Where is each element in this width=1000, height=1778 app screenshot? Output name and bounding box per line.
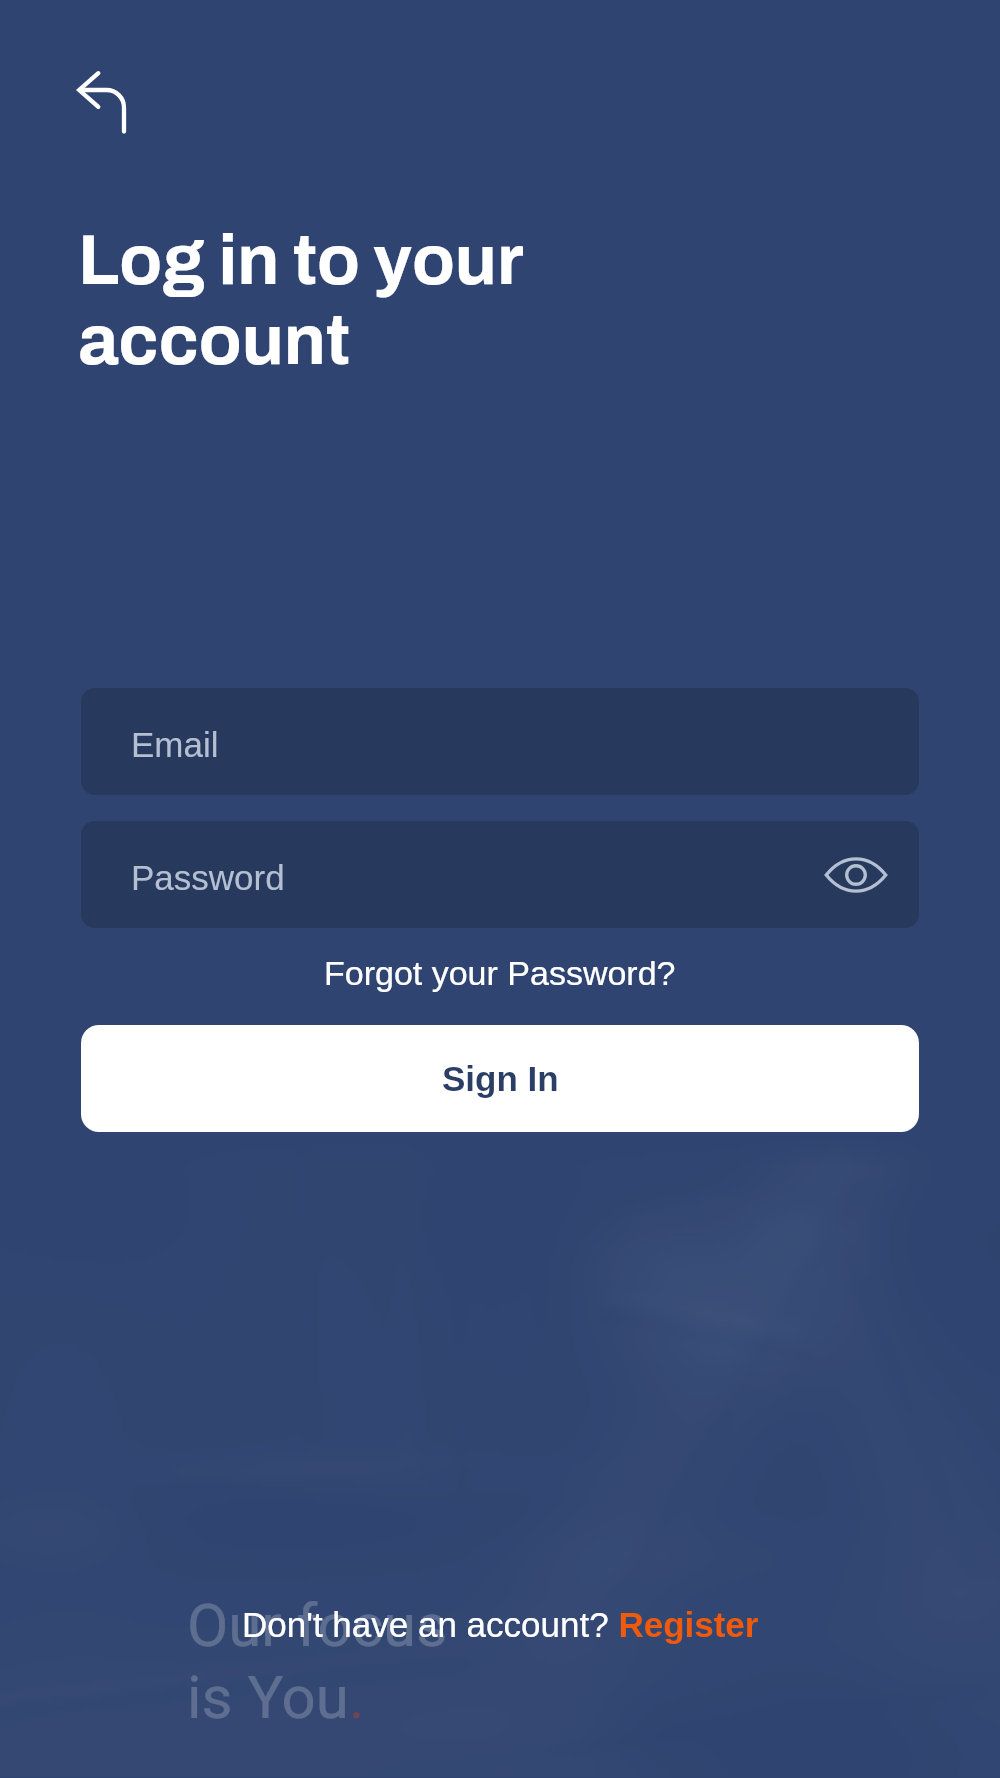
button[interactable]: Sign In [81,1025,919,1132]
button[interactable]: Forgot your Password? [314,950,686,996]
button[interactable]: Back [64,57,140,133]
button[interactable]: Password [81,821,919,928]
staticText: Email [131,725,219,764]
staticText: Don't have an account? Register [242,1605,759,1644]
staticText: Our focus is You. [187,1590,448,1733]
staticText: Password [131,858,285,897]
staticText: Log in to your account [78,223,524,378]
staticText: Forgot your Password? [324,954,676,992]
button[interactable]: Don't have an account? Register [232,1601,769,1648]
button[interactable]: Email [81,688,919,795]
staticText: Sign In [442,1059,559,1098]
button[interactable]: Show password [824,843,888,907]
